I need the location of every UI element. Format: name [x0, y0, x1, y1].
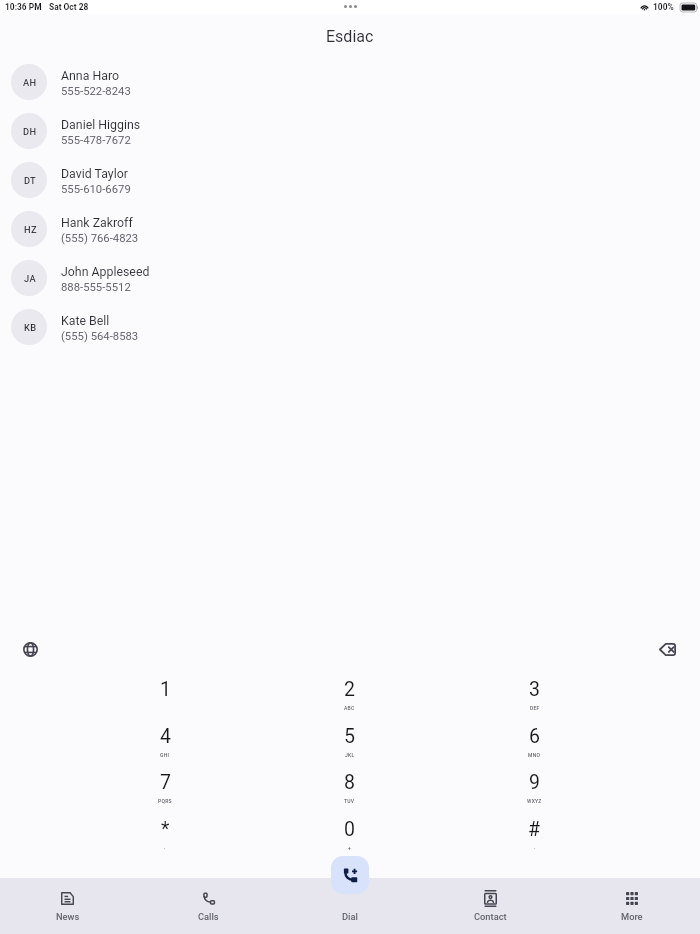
staticText: 8	[344, 771, 355, 794]
staticText: 10:36 PM	[5, 2, 42, 12]
button[interactable]: DT	[0, 155, 700, 204]
staticText: 100%	[653, 2, 674, 12]
button[interactable]: 4	[73, 724, 257, 764]
button[interactable]: *	[73, 817, 257, 857]
button[interactable]: 8	[257, 770, 442, 810]
staticText: AH	[23, 77, 37, 88]
button[interactable]: 6	[442, 724, 627, 764]
staticText: Dial	[342, 911, 358, 922]
staticText: 7	[160, 771, 171, 794]
staticText: #	[528, 818, 541, 841]
staticText: ABC	[344, 705, 355, 711]
staticText: JA	[24, 273, 36, 284]
staticText: More	[621, 911, 643, 922]
button[interactable]: DH	[0, 106, 700, 155]
button[interactable]: Add call	[331, 856, 369, 894]
staticText: 6	[529, 725, 540, 748]
staticText: TUV	[344, 798, 355, 804]
staticText: PQRS	[158, 798, 172, 804]
staticText: 555-522-8243	[61, 85, 131, 98]
button[interactable]: HZ	[0, 204, 700, 253]
button[interactable]: 1	[73, 677, 257, 717]
staticText: DEF	[530, 705, 540, 711]
staticText: 4	[160, 725, 171, 748]
staticText: (555) 766-4823	[61, 232, 139, 245]
button[interactable]: 7	[73, 770, 257, 810]
staticText: Sat Oct 28	[49, 2, 89, 12]
staticText: Esdiac	[326, 27, 374, 46]
button[interactable]: 2	[257, 677, 442, 717]
staticText: Hank Zakroff	[61, 216, 133, 230]
button[interactable]: Backspace	[651, 633, 683, 665]
button[interactable]: 9	[442, 770, 627, 810]
staticText: 555-610-6679	[61, 183, 131, 196]
button[interactable]: JA	[0, 253, 700, 302]
button[interactable]: Dial	[279, 878, 420, 934]
staticText: KB	[24, 322, 37, 333]
button[interactable]: Contact	[420, 878, 561, 934]
staticText: HZ	[24, 224, 37, 235]
staticText: 888-555-5512	[61, 281, 131, 294]
staticText: *	[161, 818, 170, 841]
staticText: ·	[164, 845, 166, 851]
staticText: DH	[23, 126, 37, 137]
staticText: +	[348, 845, 352, 851]
button[interactable]: #	[442, 817, 627, 857]
staticText: DT	[24, 175, 37, 186]
staticText: 2	[344, 678, 355, 701]
staticText: Contact	[474, 911, 507, 922]
button[interactable]: 3	[442, 677, 627, 717]
staticText: 1	[160, 678, 171, 701]
staticText: GHI	[160, 752, 170, 758]
staticText: Calls	[198, 911, 219, 922]
staticText: David Taylor	[61, 167, 128, 181]
staticText: 0	[344, 818, 355, 841]
staticText: 9	[529, 771, 540, 794]
staticText: 555-478-7672	[61, 134, 131, 147]
button[interactable]: Calls	[138, 878, 279, 934]
staticText: Daniel Higgins	[61, 118, 141, 132]
button[interactable]: More	[561, 878, 700, 934]
button[interactable]: News	[0, 878, 138, 934]
staticText: 5	[344, 725, 355, 748]
staticText: Kate Bell	[61, 314, 110, 328]
button[interactable]: 5	[257, 724, 442, 764]
staticText: News	[56, 911, 80, 922]
staticText: 3	[529, 678, 540, 701]
staticText: John Appleseed	[61, 265, 150, 279]
button[interactable]: KB	[0, 302, 700, 351]
staticText: WXYZ	[527, 798, 542, 804]
button[interactable]: Change keypad language	[14, 633, 46, 665]
staticText: Anna Haro	[61, 69, 120, 83]
staticText: JKL	[345, 752, 355, 758]
button[interactable]: AH	[0, 57, 700, 106]
staticText: ·	[534, 845, 536, 851]
staticText: (555) 564-8583	[61, 330, 139, 343]
button[interactable]: 0	[257, 817, 442, 857]
staticText: MNO	[528, 752, 541, 758]
